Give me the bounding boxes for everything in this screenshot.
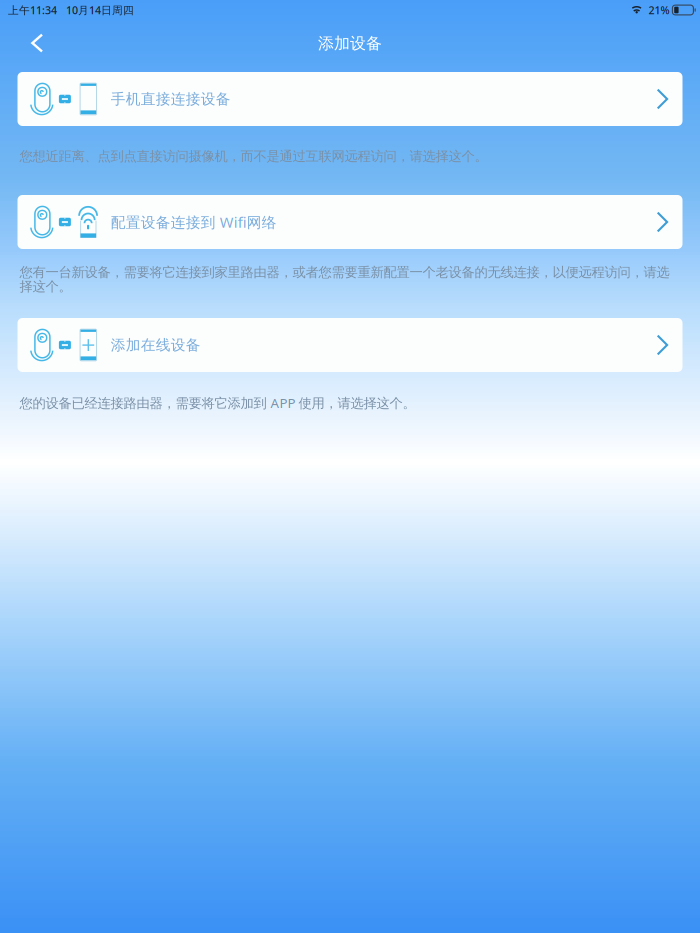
button[interactable]: 手机直接连接设备: [17, 72, 682, 126]
staticText: 添加在线设备: [111, 336, 201, 354]
staticText: 您有一台新设备，需要将它连接到家里路由器，或者您需要重新配置一个老设备的无线连接…: [19, 264, 669, 295]
staticText: 手机直接连接设备: [111, 90, 231, 108]
staticText: 添加设备: [318, 34, 382, 53]
staticText: 您想近距离、点到点直接访问摄像机，而不是通过互联网远程访问，请选择这个。: [19, 148, 487, 164]
staticText: 21%: [648, 3, 669, 17]
staticText: 配置设备连接到 Wifi网络: [111, 212, 277, 232]
button[interactable]: 添加在线设备: [17, 318, 682, 372]
staticText: 上午11:34 10月14日周四: [8, 3, 134, 17]
staticText: 您的设备已经连接路由器，需要将它添加到 APP 使用，请选择这个。: [19, 394, 415, 412]
button[interactable]: 配置设备连接到 Wifi网络: [17, 195, 682, 249]
button[interactable]: Back: [0, 20, 61, 60]
